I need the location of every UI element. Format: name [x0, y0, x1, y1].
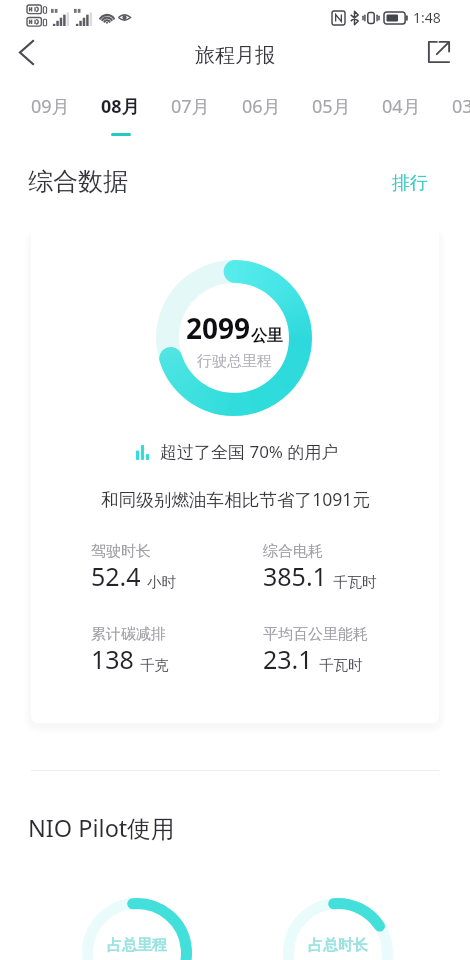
button[interactable]: 04月: [366, 94, 436, 138]
staticText: 04月: [382, 94, 421, 119]
button[interactable]: 06月: [226, 94, 296, 138]
staticText: 和同级别燃油车相比节省了1091元: [101, 487, 370, 511]
button[interactable]: 排行: [392, 172, 428, 195]
staticText: 千克: [140, 656, 169, 674]
staticText: 23.1: [263, 642, 313, 676]
staticText: 占总里程: [107, 936, 167, 955]
staticText: 超过了全国 70% 的用户: [160, 440, 339, 463]
staticText: 行驶总里程: [197, 352, 272, 371]
staticText: NIO Pilot使用: [28, 812, 175, 844]
staticText: 累计碳减排: [91, 625, 166, 644]
staticText: 占总时长: [308, 936, 368, 955]
staticText: 排行: [392, 172, 428, 195]
staticText: 公里: [251, 326, 283, 346]
staticText: 385.1: [263, 559, 327, 593]
staticText: 05月: [312, 94, 351, 119]
staticText: 千瓦时: [333, 573, 377, 591]
staticText: 综合电耗: [263, 542, 323, 561]
button[interactable]: Share: [419, 32, 459, 72]
staticText: 平均百公里能耗: [263, 625, 368, 644]
staticText: 07月: [171, 94, 210, 119]
button[interactable]: 05月: [296, 94, 366, 138]
staticText: 03月: [452, 94, 470, 119]
staticText: 驾驶时长: [91, 542, 151, 561]
staticText: 08月: [101, 94, 140, 119]
staticText: 2099: [186, 309, 251, 347]
button[interactable]: 09月: [15, 94, 85, 138]
staticText: 138: [91, 642, 134, 676]
button[interactable]: 08月: [85, 94, 155, 138]
staticText: 09月: [31, 94, 70, 119]
staticText: 06月: [242, 94, 281, 119]
staticText: 综合数据: [28, 166, 128, 197]
staticText: 1:48: [413, 8, 441, 27]
button[interactable]: 07月: [155, 94, 225, 138]
staticText: 旅程月报: [195, 43, 275, 68]
staticText: 千瓦时: [319, 656, 363, 674]
staticText: 52.4: [91, 559, 141, 593]
button[interactable]: Back: [6, 28, 46, 76]
button[interactable]: 03月: [436, 94, 470, 138]
staticText: 小时: [147, 573, 176, 591]
